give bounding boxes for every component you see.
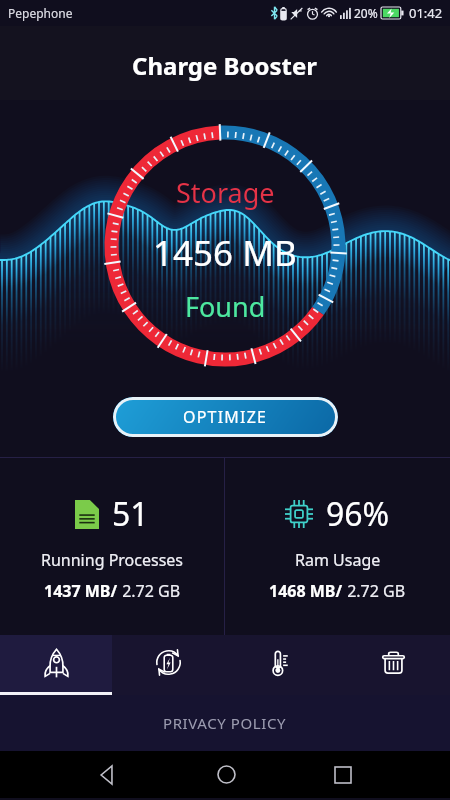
staticText: 01:42 [409,4,443,22]
staticText: 1468 MB/ [269,580,343,602]
staticText: OPTIMIZE [183,406,268,428]
staticText: 51 [112,492,149,536]
staticText: Running Processes [41,549,184,571]
staticText: 2.72 GB [343,580,406,602]
button[interactable]: Battery saver [112,635,224,695]
staticText: Found [185,288,266,325]
button[interactable]: PRIVACY POLICY [0,695,450,751]
staticText: 2.72 GB [118,580,181,602]
button[interactable]: 96% [225,458,450,635]
button[interactable]: 51 [0,458,224,635]
button[interactable]: Cooler [224,635,337,695]
staticText: 20% [354,5,378,21]
staticText: Ram Usage [295,549,381,571]
button[interactable]: OPTIMIZE [113,397,338,437]
button[interactable]: Junk cleaner [337,635,450,695]
staticText: PRIVACY POLICY [163,713,287,733]
button[interactable]: Boost [0,635,112,695]
staticText: 1456 MB [153,229,297,277]
staticText: 1437 MB/ [44,580,118,602]
staticText: Storage [176,174,275,211]
staticText: Pepephone [8,5,73,21]
staticText: 96% [326,492,390,536]
staticText: Charge Booster [132,49,318,82]
